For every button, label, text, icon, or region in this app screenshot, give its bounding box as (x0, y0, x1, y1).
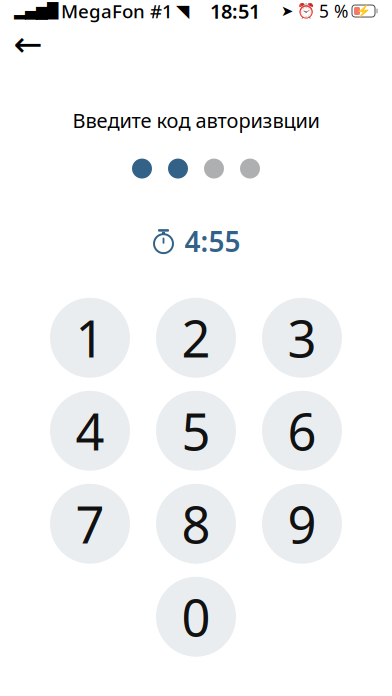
staticText: 0 (181, 583, 210, 650)
button[interactable]: 4 (50, 391, 130, 471)
staticText: ➤ (281, 3, 293, 19)
staticText: 18:51 (210, 0, 260, 24)
button[interactable]: 9 (262, 484, 342, 564)
button[interactable]: 7 (50, 484, 130, 564)
button[interactable]: 5 (156, 391, 236, 471)
staticText: 6 (287, 397, 316, 464)
staticText: 7 (75, 490, 104, 557)
staticText: ← (13, 24, 42, 64)
staticText: Введите код авторизвции (72, 107, 319, 134)
staticText: 5 % (319, 0, 348, 22)
staticText: MegaFon #1 (61, 0, 173, 23)
staticText: 4:55 (184, 223, 240, 260)
staticText: 3 (287, 304, 316, 371)
button[interactable]: 2 (156, 298, 236, 378)
staticText: 1 (75, 304, 104, 371)
staticText: ▂▄▆█ (14, 3, 58, 19)
staticText: ⏰ (297, 3, 315, 19)
button[interactable]: 1 (50, 298, 130, 378)
button[interactable]: 8 (156, 484, 236, 564)
staticText: 9 (287, 490, 316, 557)
staticText: ◥ (176, 1, 189, 21)
staticText: 4 (75, 397, 104, 464)
button[interactable]: 6 (262, 391, 342, 471)
button[interactable]: 3 (262, 298, 342, 378)
button[interactable]: 0 (156, 577, 236, 657)
staticText: ⚡ (356, 4, 371, 18)
staticText: 8 (181, 490, 210, 557)
staticText: 2 (181, 304, 210, 371)
button[interactable]: Back (6, 22, 50, 66)
staticText: 5 (181, 397, 210, 464)
